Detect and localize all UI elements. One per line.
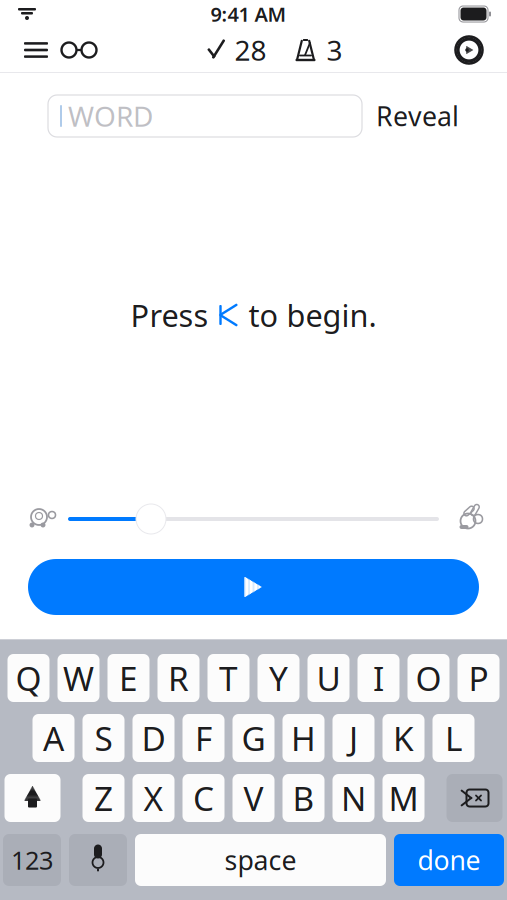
staticText: WORD	[68, 97, 153, 135]
button[interactable]: 3	[292, 28, 342, 72]
button[interactable]: B	[282, 774, 324, 822]
button[interactable]: done	[394, 834, 504, 886]
button[interactable]: Reveal	[376, 95, 459, 137]
button[interactable]: S	[82, 714, 124, 762]
button[interactable]: D	[132, 714, 174, 762]
button[interactable]: F	[182, 714, 224, 762]
staticText: Reveal	[376, 98, 459, 134]
button[interactable]: G	[232, 714, 274, 762]
staticText: N	[341, 776, 366, 820]
staticText: U	[316, 656, 340, 700]
button[interactable]: Dictate	[69, 834, 127, 886]
button[interactable]: space	[135, 834, 386, 886]
button[interactable]: Shift	[4, 774, 60, 822]
button[interactable]: Settings	[447, 28, 491, 72]
staticText: 28	[234, 31, 266, 69]
staticText: L	[445, 716, 462, 760]
button[interactable]: 28	[206, 28, 266, 72]
staticText: 3	[326, 31, 342, 69]
staticText: F	[195, 716, 212, 760]
button[interactable]: P	[457, 654, 499, 702]
staticText: G	[241, 716, 265, 760]
button[interactable]: M	[382, 774, 424, 822]
staticText: I	[373, 656, 384, 700]
button[interactable]: C	[182, 774, 224, 822]
staticText: X	[143, 776, 163, 820]
staticText: W	[63, 656, 94, 700]
button[interactable]: N	[332, 774, 374, 822]
staticText: S	[94, 716, 112, 760]
button[interactable]: J	[332, 714, 374, 762]
button[interactable]: A	[32, 714, 74, 762]
staticText: P	[468, 656, 488, 700]
staticText: D	[141, 716, 165, 760]
button[interactable]: Z	[82, 774, 124, 822]
button[interactable]: E	[107, 654, 149, 702]
button[interactable]: Y	[257, 654, 299, 702]
button[interactable]: Q	[7, 654, 49, 702]
staticText: Q	[15, 656, 41, 700]
staticText: O	[415, 656, 441, 700]
button[interactable]: Menu	[16, 28, 56, 72]
staticText: B	[292, 776, 314, 820]
staticText: V	[243, 776, 263, 820]
button[interactable]: K	[382, 714, 424, 762]
button[interactable]: O	[407, 654, 449, 702]
staticText: H	[291, 716, 316, 760]
staticText: space	[224, 842, 296, 878]
button[interactable]: L	[432, 714, 474, 762]
button[interactable]: Delete	[446, 774, 502, 822]
button[interactable]: T	[207, 654, 249, 702]
staticText: M	[388, 776, 418, 820]
button[interactable]: X	[132, 774, 174, 822]
button[interactable]: V	[232, 774, 274, 822]
staticText: E	[119, 656, 138, 700]
staticText: 123	[11, 843, 53, 877]
button[interactable]: I	[357, 654, 399, 702]
staticText: Press	[130, 295, 208, 335]
staticText: A	[43, 716, 64, 760]
staticText: C	[193, 776, 214, 820]
staticText: R	[168, 656, 189, 700]
staticText: Z	[94, 776, 113, 820]
staticText: K	[393, 716, 414, 760]
button[interactable]: Play	[28, 559, 479, 615]
button[interactable]: H	[282, 714, 324, 762]
button[interactable]: W	[57, 654, 99, 702]
button[interactable]: 123	[3, 834, 61, 886]
staticText: 9:41 AM	[210, 1, 286, 27]
staticText: to begin.	[248, 295, 376, 335]
staticText: done	[417, 842, 480, 878]
button[interactable]: R	[157, 654, 199, 702]
button[interactable]: U	[307, 654, 349, 702]
staticText: J	[349, 716, 358, 760]
button[interactable]: Reading mode	[56, 28, 102, 72]
staticText: Y	[269, 656, 288, 700]
staticText: T	[219, 656, 238, 700]
